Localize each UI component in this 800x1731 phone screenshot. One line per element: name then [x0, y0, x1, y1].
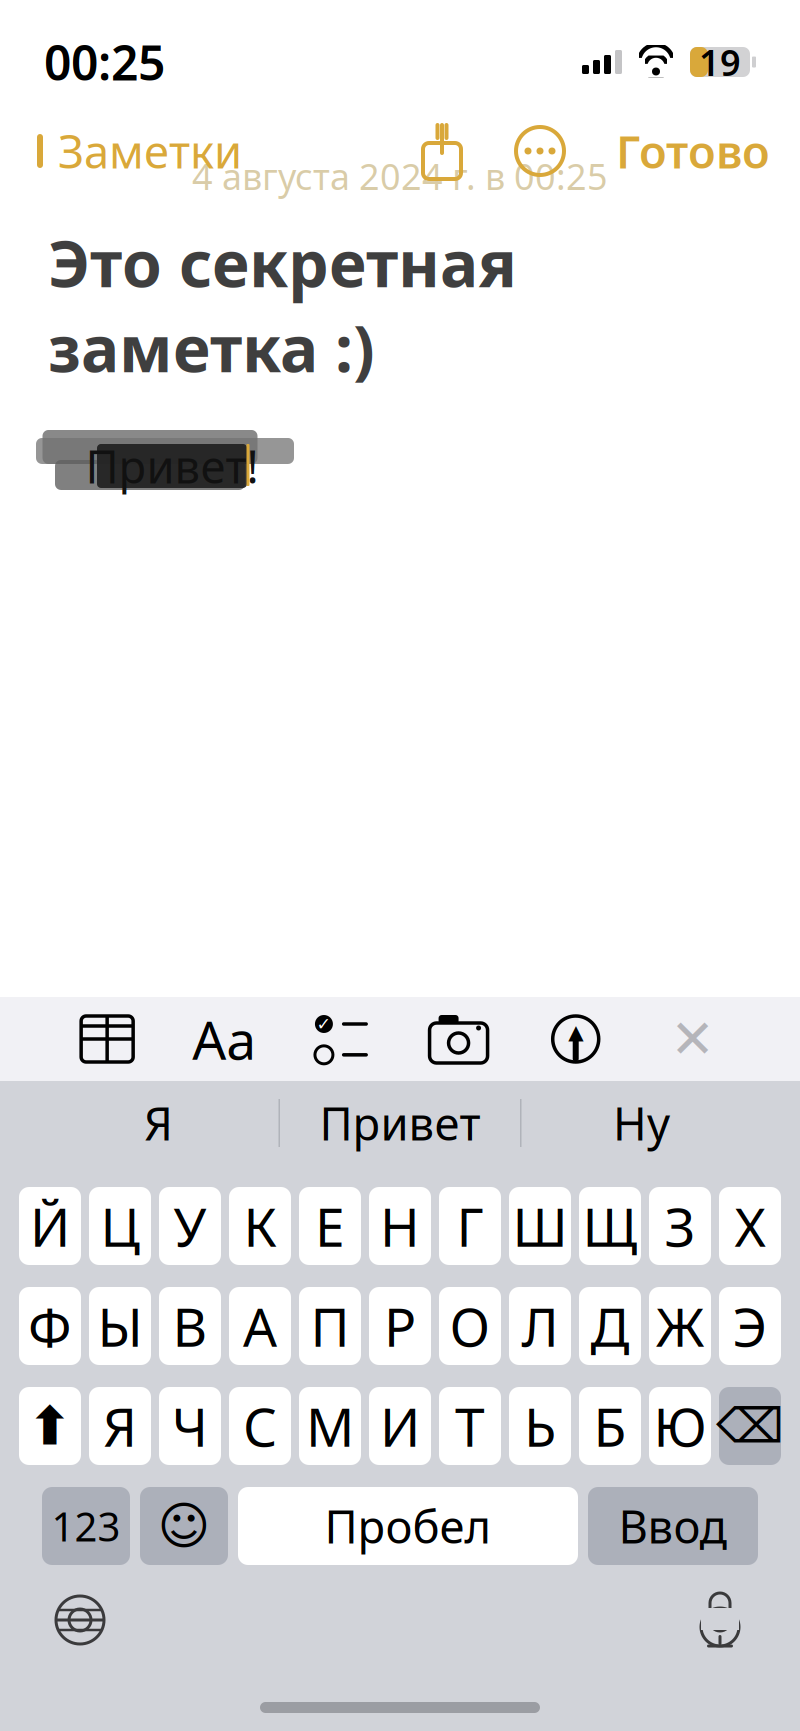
staticText: М: [306, 1391, 354, 1461]
button[interactable]: Ч: [159, 1387, 221, 1465]
button[interactable]: Н: [369, 1187, 431, 1265]
staticText: Aa: [192, 1004, 256, 1074]
staticText: Пробел: [324, 1496, 491, 1556]
button[interactable]: Ц: [89, 1187, 151, 1265]
button[interactable]: О: [439, 1287, 501, 1365]
button[interactable]: Закрыть: [661, 1007, 725, 1071]
staticText: З: [664, 1191, 695, 1261]
button[interactable]: З: [649, 1187, 711, 1265]
staticText: Ь: [524, 1391, 556, 1461]
button[interactable]: Разметка: [544, 1007, 608, 1071]
staticText: Э: [732, 1291, 767, 1361]
staticText: У: [173, 1191, 206, 1261]
staticText: Я: [144, 1093, 173, 1153]
staticText: Р: [384, 1291, 416, 1361]
button[interactable]: А: [229, 1287, 291, 1365]
staticText: Это секретная заметка :): [48, 220, 517, 390]
button[interactable]: Р: [369, 1287, 431, 1365]
button[interactable]: Готово: [610, 111, 776, 191]
button[interactable]: Ну: [521, 1081, 761, 1165]
button[interactable]: Ы: [89, 1287, 151, 1365]
button[interactable]: М: [299, 1387, 361, 1465]
button[interactable]: Ш: [509, 1187, 571, 1265]
staticText: 00:25: [44, 30, 165, 94]
button[interactable]: Ещё: [512, 127, 568, 175]
button[interactable]: Щ: [579, 1187, 641, 1265]
staticText: Ввод: [618, 1496, 727, 1556]
button[interactable]: Я: [38, 1081, 278, 1165]
staticText: Ну: [613, 1093, 670, 1153]
button[interactable]: Таблица: [75, 1007, 139, 1071]
staticText: Я: [103, 1391, 137, 1461]
staticText: ▲: [568, 1021, 583, 1043]
button[interactable]: Формат: [192, 1007, 256, 1071]
staticText: Т: [455, 1391, 485, 1461]
staticText: Заметки: [58, 121, 242, 181]
staticText: Д: [590, 1291, 629, 1361]
button[interactable]: Д: [579, 1287, 641, 1365]
button[interactable]: С: [229, 1387, 291, 1465]
button[interactable]: Shift: [19, 1387, 81, 1465]
staticText: 4 августа 2024 г. в 00:25: [192, 152, 608, 200]
button[interactable]: И: [369, 1387, 431, 1465]
button[interactable]: Е: [299, 1187, 361, 1265]
button[interactable]: Ь: [509, 1387, 571, 1465]
button[interactable]: Й: [19, 1187, 81, 1265]
staticText: Щ: [582, 1191, 637, 1261]
button[interactable]: П: [299, 1287, 361, 1365]
button[interactable]: У: [159, 1187, 221, 1265]
staticText: В: [172, 1291, 207, 1361]
staticText: Привет: [319, 1093, 480, 1153]
button[interactable]: Камера: [427, 1007, 491, 1071]
button[interactable]: Эмодзи: [140, 1487, 228, 1565]
staticText: П: [310, 1291, 349, 1361]
button[interactable]: Ж: [649, 1287, 711, 1365]
staticText: Л: [521, 1291, 558, 1361]
button[interactable]: Я: [89, 1387, 151, 1465]
button[interactable]: В: [159, 1287, 221, 1365]
staticText: Е: [315, 1191, 345, 1261]
button[interactable]: Привет: [280, 1081, 520, 1165]
staticText: Ф: [28, 1291, 72, 1361]
staticText: А: [243, 1291, 277, 1361]
button[interactable]: Л: [509, 1287, 571, 1365]
button[interactable]: Ввод: [588, 1487, 758, 1565]
staticText: И: [380, 1391, 420, 1461]
staticText: Б: [593, 1391, 626, 1461]
staticText: Ч: [172, 1391, 208, 1461]
staticText: С: [243, 1391, 277, 1461]
button[interactable]: 123: [42, 1487, 130, 1565]
staticText: Н: [380, 1191, 420, 1261]
staticText: Ш: [512, 1191, 567, 1261]
staticText: Ю: [653, 1391, 706, 1461]
staticText: 19: [699, 38, 741, 86]
button[interactable]: Г: [439, 1187, 501, 1265]
staticText: Ж: [656, 1291, 704, 1361]
button[interactable]: Пробел: [238, 1487, 578, 1565]
button[interactable]: Т: [439, 1387, 501, 1465]
button[interactable]: К: [229, 1187, 291, 1265]
staticText: ⬆: [27, 1396, 72, 1456]
staticText: Ы: [97, 1291, 142, 1361]
staticText: ⌫: [716, 1399, 784, 1453]
button[interactable]: Сменить язык: [48, 1588, 112, 1652]
staticText: Г: [456, 1191, 483, 1261]
button[interactable]: Заметки: [24, 111, 248, 191]
staticText: Привет!: [85, 436, 258, 496]
button[interactable]: Список: [309, 1007, 373, 1071]
button[interactable]: Х: [719, 1187, 781, 1265]
staticText: О: [449, 1291, 490, 1361]
button[interactable]: Ф: [19, 1287, 81, 1365]
staticText: Ц: [100, 1191, 139, 1261]
staticText: ✕: [670, 1009, 715, 1069]
button[interactable]: Поделиться: [414, 123, 470, 179]
button[interactable]: Ю: [649, 1387, 711, 1465]
staticText: Й: [30, 1191, 70, 1261]
staticText: ✓: [316, 1014, 331, 1034]
button[interactable]: Диктовка: [688, 1587, 752, 1653]
staticText: Готово: [616, 121, 770, 181]
button[interactable]: Удалить: [719, 1387, 781, 1465]
button[interactable]: Э: [719, 1287, 781, 1365]
button[interactable]: Б: [579, 1387, 641, 1465]
staticText: К: [243, 1191, 276, 1261]
